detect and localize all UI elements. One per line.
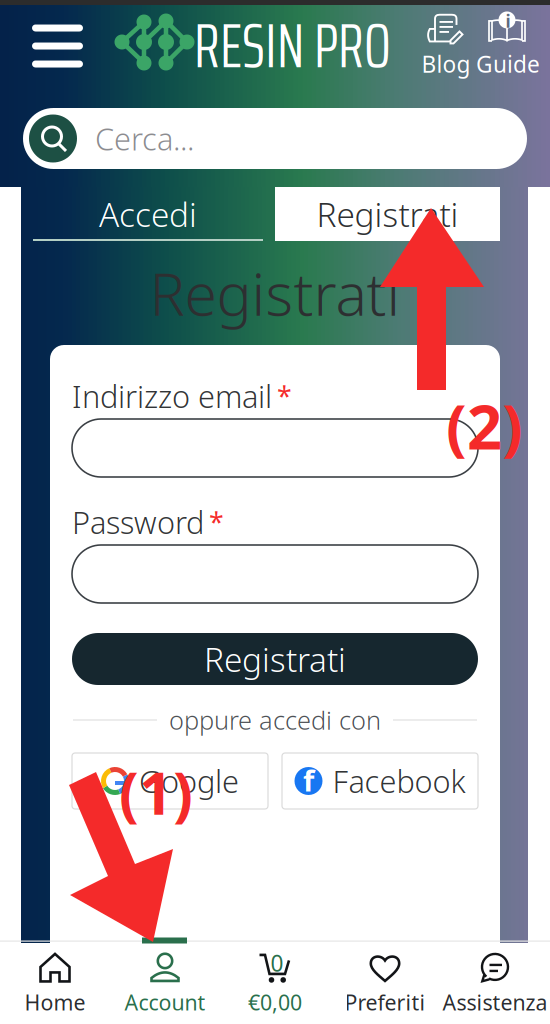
button[interactable]: f (282, 753, 478, 809)
staticText: RESIN PRO (194, 0, 391, 94)
button[interactable]: Accedi (21, 187, 275, 241)
staticText: 0 (270, 948, 283, 978)
button[interactable]: Menu (0, 5, 115, 87)
staticText: Account (124, 988, 205, 1016)
staticText: Facebook (332, 761, 465, 801)
staticText: Cerca... (95, 118, 194, 159)
staticText: Assistenza (442, 988, 547, 1016)
button[interactable]: Google (72, 753, 268, 809)
button[interactable]: i (480, 5, 536, 87)
staticText: * (209, 504, 224, 540)
staticText: (1) (119, 753, 193, 831)
button[interactable]: Preferiti (330, 944, 440, 1024)
staticText: Google (139, 761, 239, 801)
staticText: oppure accedi con (169, 703, 381, 737)
button[interactable]: Account (110, 944, 220, 1024)
staticText: (2) (446, 385, 523, 466)
staticText: Accedi (99, 192, 197, 236)
staticText: Indirizzo email (72, 376, 272, 416)
staticText: * (277, 378, 292, 414)
button[interactable]: 0 (220, 944, 330, 1024)
staticText: Blog (421, 49, 470, 79)
staticText: Registrati (149, 254, 400, 332)
staticText: Registrati (316, 192, 458, 236)
button[interactable]: Assistenza (440, 944, 550, 1024)
staticText: f (303, 760, 314, 799)
staticText: Home (24, 988, 85, 1016)
button[interactable]: Registrati (275, 187, 500, 241)
staticText: i (505, 9, 510, 32)
button[interactable]: Cerca... (23, 108, 527, 169)
staticText: Registrati (204, 637, 346, 681)
staticText: €0,00 (248, 988, 302, 1016)
button[interactable]: Registrati (72, 633, 478, 685)
button[interactable]: Blog (420, 5, 472, 87)
staticText: Preferiti (344, 988, 425, 1016)
staticText: Guide (476, 49, 540, 79)
staticText: Password (72, 502, 204, 542)
button[interactable]: Home (0, 944, 110, 1024)
